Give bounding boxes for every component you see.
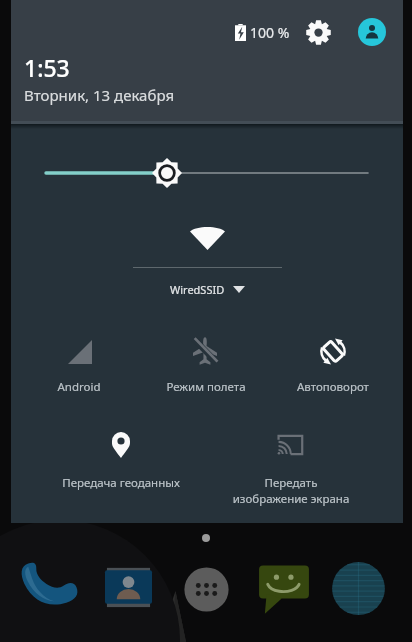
staticText: 1:53 [24,52,70,83]
button[interactable]: Brightness [35,156,379,190]
staticText: Вторник, 13 декабря [24,85,175,105]
button[interactable]: Battery 100 percent, charging [229,14,295,50]
button[interactable]: Wi-Fi WiredSSID [71,215,343,305]
button[interactable]: User profile [353,13,391,51]
button[interactable]: Режим полета [155,324,279,392]
button[interactable]: Browser [327,557,390,620]
button[interactable]: Phone [20,553,78,611]
staticText: Передать изображение экрана [221,475,361,506]
button[interactable]: Contacts [100,558,157,615]
button[interactable]: Автоповорот [282,326,406,394]
button[interactable]: Android [28,328,152,396]
staticText: Передача геоданных [52,475,190,491]
staticText: Автоповорот [283,379,383,395]
staticText: Android [39,379,119,395]
staticText: Режим полета [156,379,256,395]
button[interactable]: Messaging [251,554,317,620]
staticText: WiredSSID [170,282,225,297]
button[interactable]: Передать изображение экрана [240,420,364,488]
button[interactable]: Apps [179,562,234,617]
button[interactable]: Передача геоданных [70,420,194,488]
staticText: 100 % [250,23,290,42]
button[interactable]: Clock and date [24,52,175,105]
button[interactable]: Settings [299,13,337,51]
